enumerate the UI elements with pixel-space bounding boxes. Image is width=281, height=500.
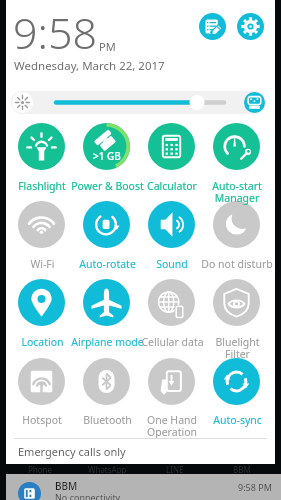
staticText: Auto-sync bbox=[213, 413, 262, 427]
staticText: Airplane mode bbox=[71, 335, 144, 349]
staticText: Calculator bbox=[147, 179, 197, 193]
staticText: Auto-start Manager bbox=[212, 179, 262, 205]
staticText: Phone bbox=[28, 464, 53, 475]
staticText: Do not disturb bbox=[201, 257, 273, 271]
staticText: Cellular data bbox=[141, 335, 204, 349]
staticText: Flashlight bbox=[18, 179, 66, 193]
button[interactable] bbox=[9, 358, 74, 432]
button[interactable] bbox=[204, 201, 269, 275]
staticText: Hotspot bbox=[22, 413, 62, 427]
button[interactable] bbox=[204, 123, 269, 197]
staticText: One Hand Operation bbox=[147, 413, 197, 439]
staticText: Emergency calls only bbox=[18, 444, 126, 459]
staticText: 9:58 bbox=[13, 3, 98, 62]
button[interactable] bbox=[204, 279, 269, 353]
button[interactable] bbox=[74, 279, 139, 353]
button[interactable] bbox=[9, 201, 74, 275]
button[interactable] bbox=[139, 358, 204, 432]
button[interactable]: Brightness bbox=[12, 92, 33, 113]
staticText: Power & Boost bbox=[71, 179, 144, 193]
button[interactable] bbox=[139, 123, 204, 197]
button[interactable] bbox=[139, 201, 204, 275]
staticText: Wednesday, March 22, 2017 bbox=[14, 58, 165, 74]
button[interactable]: Settings bbox=[237, 13, 264, 40]
staticText: Bluetooth bbox=[83, 413, 132, 427]
staticText: BBM bbox=[55, 479, 78, 493]
button[interactable] bbox=[204, 358, 269, 432]
button[interactable] bbox=[139, 279, 204, 353]
staticText: WhatsApp bbox=[88, 464, 127, 475]
button[interactable]: >1 GB bbox=[74, 123, 139, 197]
staticText: Bluelight Filter bbox=[215, 335, 260, 361]
staticText: No connectivity bbox=[55, 491, 121, 500]
button[interactable] bbox=[74, 201, 139, 275]
staticText: 9:58 PM bbox=[238, 481, 272, 493]
staticText: Sound bbox=[156, 257, 188, 271]
staticText: Location bbox=[21, 335, 64, 349]
staticText: >1 GB bbox=[93, 149, 121, 163]
button[interactable] bbox=[74, 358, 139, 432]
button[interactable]: BBM bbox=[6, 474, 281, 500]
staticText: BBM bbox=[233, 464, 251, 475]
button[interactable] bbox=[9, 279, 74, 353]
button[interactable] bbox=[9, 123, 74, 197]
staticText: Auto-rotate bbox=[79, 257, 136, 271]
staticText: Wi-Fi bbox=[30, 257, 55, 271]
staticText: LINE bbox=[166, 464, 184, 475]
staticText: PM bbox=[99, 39, 116, 54]
button[interactable]: Edit quick settings bbox=[199, 13, 226, 40]
button[interactable]: Auto brightness bbox=[244, 92, 265, 113]
